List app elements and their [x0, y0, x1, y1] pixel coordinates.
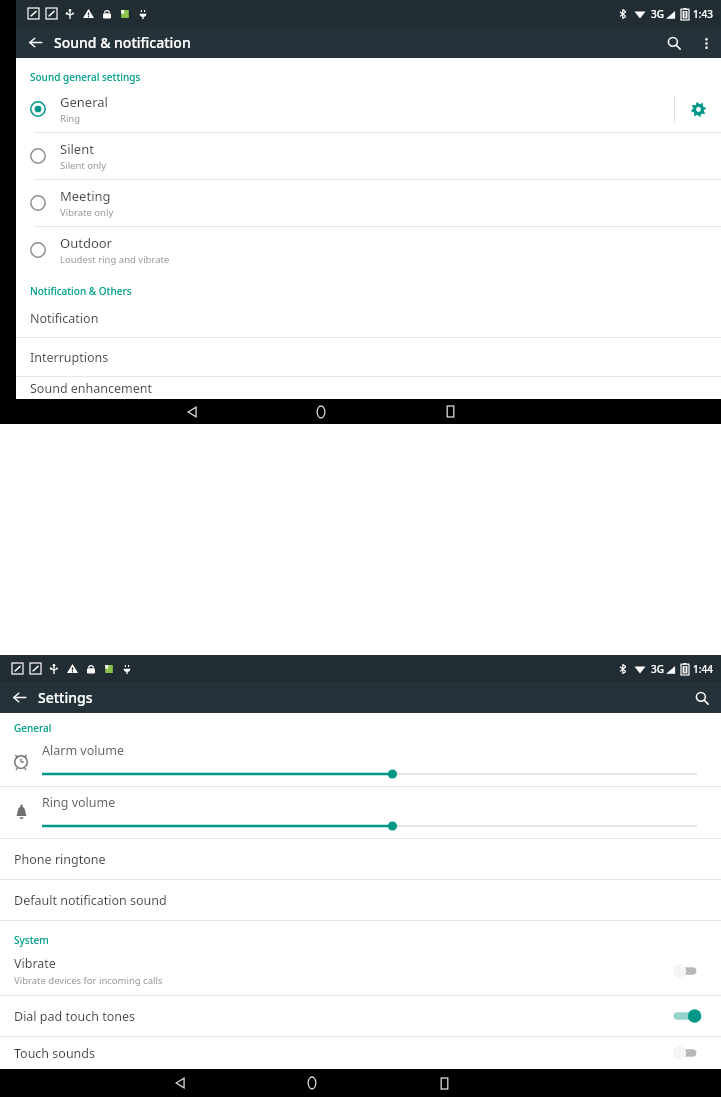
staticText: 1:44 — [693, 662, 713, 676]
staticText: Ring volume — [42, 794, 116, 811]
staticText: Meeting — [60, 187, 111, 205]
button[interactable]: Outdoor — [16, 227, 721, 273]
staticText: General — [14, 721, 52, 735]
staticText: 3G — [651, 7, 664, 21]
staticText: Notification — [30, 310, 99, 327]
staticText: Vibrate devices for incoming calls — [14, 974, 163, 987]
button[interactable]: Back — [167, 1070, 193, 1096]
staticText: General — [60, 93, 108, 111]
button[interactable]: Search — [683, 682, 721, 713]
staticText: Ring — [60, 112, 81, 125]
staticText: Vibrate — [14, 955, 56, 972]
staticText: 1:43 — [693, 7, 713, 21]
button[interactable]: Phone ringtone — [0, 839, 721, 879]
button[interactable]: Search — [657, 27, 691, 58]
button[interactable]: Ring volume — [0, 787, 721, 838]
staticText: Phone ringtone — [14, 851, 106, 868]
button[interactable]: Silent — [16, 133, 721, 179]
staticText: Sound & notification — [54, 33, 191, 52]
button[interactable]: Recent apps — [437, 399, 463, 424]
button[interactable]: Recent apps — [431, 1070, 457, 1096]
staticText: 3G — [651, 662, 664, 676]
button[interactable]: Default notification sound — [0, 880, 721, 920]
button[interactable]: Dial pad touch tones — [0, 996, 721, 1036]
staticText: Dial pad touch tones — [14, 1008, 136, 1025]
button[interactable]: Alarm volume — [0, 735, 721, 786]
button[interactable]: Back — [16, 27, 54, 58]
button[interactable]: General settings — [675, 86, 721, 132]
button[interactable]: Notification — [16, 299, 721, 337]
button[interactable]: Sound enhancement — [16, 377, 721, 399]
staticText: Alarm volume — [42, 742, 124, 759]
staticText: Silent only — [60, 159, 107, 172]
staticText: Touch sounds — [14, 1045, 96, 1062]
button[interactable]: General — [16, 86, 721, 132]
button[interactable]: Home — [299, 1070, 325, 1096]
button[interactable]: More options — [691, 28, 721, 58]
button[interactable]: Touch sounds — [0, 1037, 721, 1069]
staticText: Sound general settings — [30, 70, 141, 84]
button[interactable]: Home — [308, 399, 334, 424]
staticText: Settings — [38, 688, 93, 707]
button[interactable]: Vibrate — [0, 947, 721, 995]
staticText: Vibrate only — [60, 206, 114, 219]
button[interactable]: Back — [0, 682, 38, 713]
staticText: Notification & Others — [30, 284, 132, 298]
button[interactable]: Back — [179, 399, 205, 424]
staticText: System — [14, 933, 49, 947]
staticText: Loudest ring and vibrate — [60, 253, 170, 266]
staticText: Interruptions — [30, 349, 109, 366]
button[interactable]: Meeting — [16, 180, 721, 226]
staticText: Sound enhancement — [30, 380, 153, 397]
staticText: Outdoor — [60, 234, 112, 252]
staticText: Silent — [60, 140, 94, 158]
button[interactable]: Interruptions — [16, 338, 721, 376]
staticText: Default notification sound — [14, 892, 167, 909]
